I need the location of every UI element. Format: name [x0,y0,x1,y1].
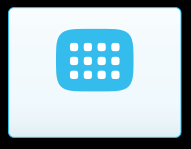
button[interactable]: Keypad [8,8,181,137]
